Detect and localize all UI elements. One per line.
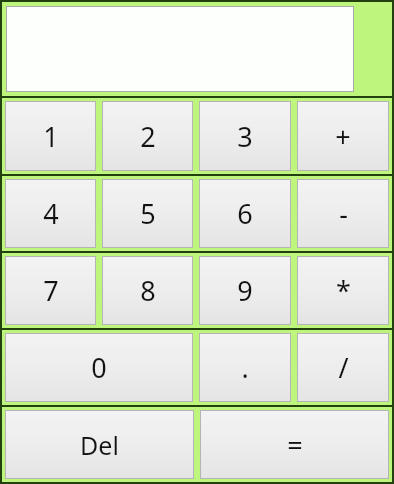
button[interactable]: 5 bbox=[102, 179, 193, 248]
staticText: - bbox=[339, 195, 348, 232]
button[interactable]: 8 bbox=[102, 256, 193, 325]
staticText: 2 bbox=[140, 118, 156, 155]
staticText: 1 bbox=[43, 118, 59, 155]
button[interactable]: 2 bbox=[102, 101, 193, 171]
button[interactable]: 4 bbox=[5, 179, 96, 248]
button[interactable]: / bbox=[297, 333, 389, 402]
staticText: Del bbox=[80, 428, 119, 462]
button[interactable]: 0 bbox=[5, 333, 193, 402]
staticText: 8 bbox=[140, 272, 156, 309]
button[interactable]: = bbox=[200, 410, 389, 479]
staticText: 6 bbox=[237, 195, 253, 232]
button[interactable]: 9 bbox=[199, 256, 291, 325]
button[interactable]: 3 bbox=[199, 101, 291, 171]
staticText: . bbox=[241, 349, 249, 386]
staticText: * bbox=[336, 272, 351, 309]
button[interactable]: - bbox=[297, 179, 389, 248]
staticText: / bbox=[338, 349, 349, 386]
staticText: 7 bbox=[43, 272, 59, 309]
button[interactable]: 6 bbox=[199, 179, 291, 248]
staticText: 3 bbox=[237, 118, 253, 155]
button[interactable]: Display bbox=[6, 6, 354, 92]
staticText: + bbox=[335, 118, 351, 155]
staticText: 0 bbox=[91, 349, 107, 386]
button[interactable]: . bbox=[199, 333, 291, 402]
staticText: 4 bbox=[43, 195, 59, 232]
staticText: 9 bbox=[237, 272, 253, 309]
staticText: 5 bbox=[140, 195, 156, 232]
button[interactable]: Del bbox=[5, 410, 194, 479]
button[interactable]: + bbox=[297, 101, 389, 171]
button[interactable]: 7 bbox=[5, 256, 96, 325]
button[interactable]: 1 bbox=[5, 101, 96, 171]
button[interactable]: * bbox=[297, 256, 389, 325]
staticText: = bbox=[287, 426, 303, 463]
